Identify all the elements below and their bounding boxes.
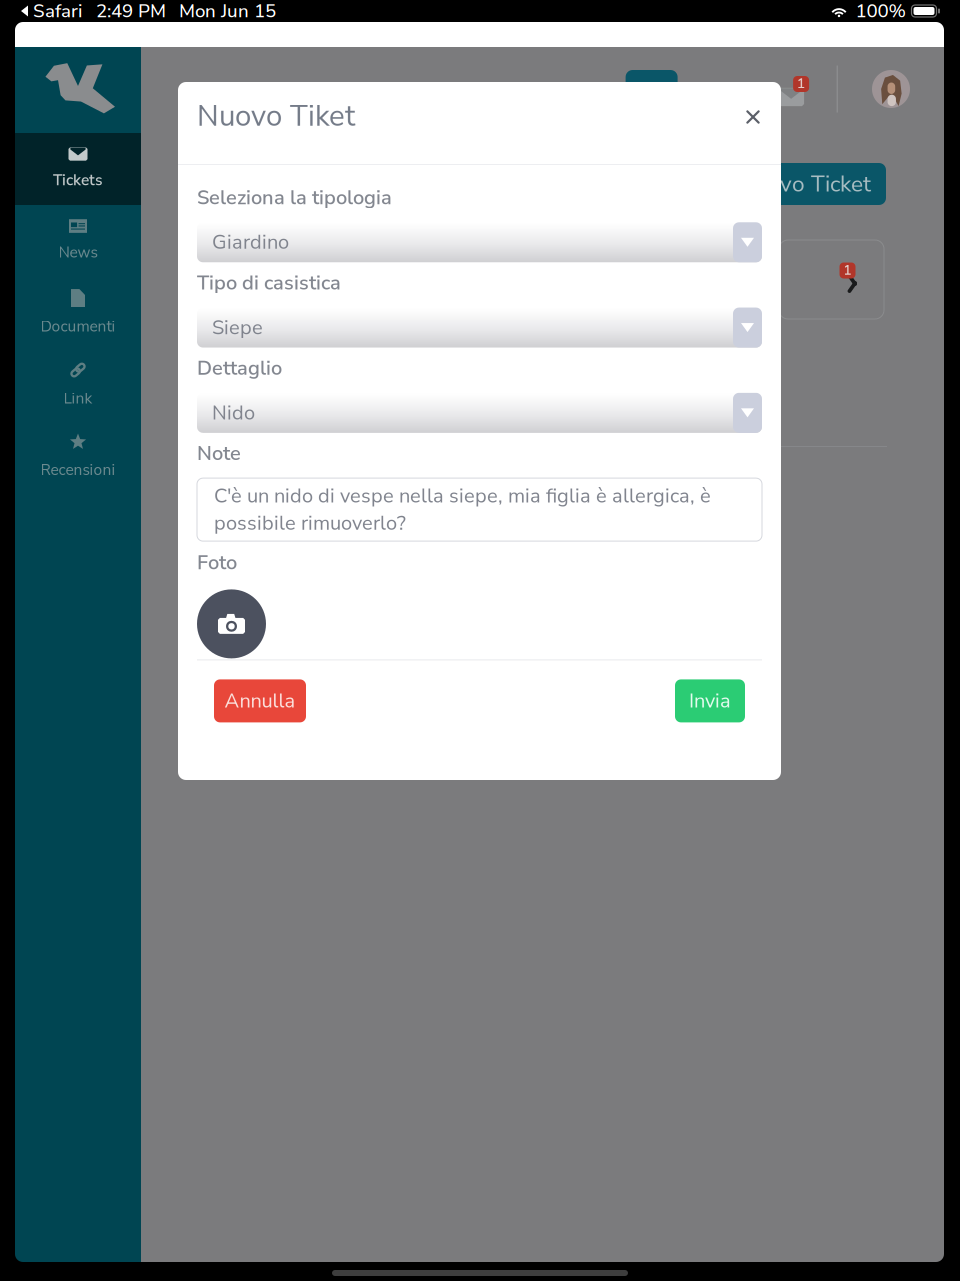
button[interactable]: Tickets [15, 133, 141, 205]
button[interactable]: Chiudi [735, 99, 771, 135]
staticText: Invia [689, 687, 731, 715]
staticText: Note [197, 440, 241, 467]
staticText: Recensioni [40, 459, 115, 480]
staticText: Dettaglio [197, 355, 282, 382]
button[interactable]: Recensioni [15, 421, 141, 493]
button[interactable]: News [15, 205, 141, 277]
button[interactable]: Nido [197, 393, 762, 433]
staticText: 2:49 PM [96, 0, 166, 24]
button[interactable]: Cerca [626, 70, 678, 108]
button[interactable]: Invia [675, 679, 745, 722]
staticText: News [58, 242, 97, 263]
staticText: C'è un nido di vespe nella siepe, mia fi… [214, 482, 711, 537]
staticText: Documenti [40, 316, 115, 337]
staticText: Siepe [212, 314, 263, 341]
button[interactable]: Messaggi [776, 72, 807, 106]
button[interactable]: Nuovo Ticket [723, 163, 886, 205]
button[interactable]: 1 [779, 240, 884, 319]
staticText: Link [63, 388, 92, 409]
staticText: Tickets [53, 170, 103, 191]
button[interactable]: Profilo [872, 70, 910, 108]
staticText: Mon Jun 15 [179, 0, 276, 24]
button[interactable]: Giardino [197, 222, 762, 262]
button[interactable]: Documenti [15, 277, 141, 349]
staticText: Foto [197, 549, 237, 576]
button[interactable]: Siepe [197, 308, 762, 348]
staticText: 1 [797, 75, 805, 93]
button[interactable]: Link [15, 349, 141, 421]
staticText: Nuovo Ticket [738, 168, 871, 199]
staticText: 100% [855, 0, 905, 24]
button[interactable]: Aggiungi foto [197, 589, 266, 658]
staticText: Nuovo Tiket [197, 96, 355, 136]
staticText: Tipo di casistica [197, 269, 341, 297]
button[interactable]: Annulla [214, 679, 306, 722]
staticText: Nido [212, 399, 255, 426]
staticText: 1 [843, 261, 851, 279]
staticText: Seleziona la tipologia [197, 184, 392, 211]
staticText: Annulla [224, 687, 295, 715]
staticText: Giardino [212, 229, 289, 256]
staticText: Safari [33, 0, 82, 24]
